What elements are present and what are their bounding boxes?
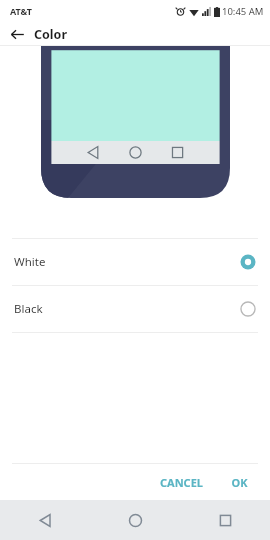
button[interactable]: Black	[0, 286, 270, 332]
button[interactable]: White	[0, 239, 270, 285]
staticText: White	[14, 254, 240, 270]
staticText: Black	[14, 301, 240, 317]
staticText: AT&T	[10, 5, 33, 17]
staticText: CANCEL	[160, 475, 203, 490]
button[interactable]: Recent apps	[180, 500, 270, 540]
staticText: Color	[34, 26, 67, 43]
button[interactable]: Back	[0, 22, 34, 46]
button[interactable]: Back	[0, 500, 90, 540]
button[interactable]: CANCEL	[152, 469, 211, 496]
staticText: OK	[231, 475, 248, 490]
staticText: 10:45 AM	[222, 5, 264, 18]
button[interactable]: OK	[223, 469, 256, 496]
button[interactable]: Home	[90, 500, 180, 540]
